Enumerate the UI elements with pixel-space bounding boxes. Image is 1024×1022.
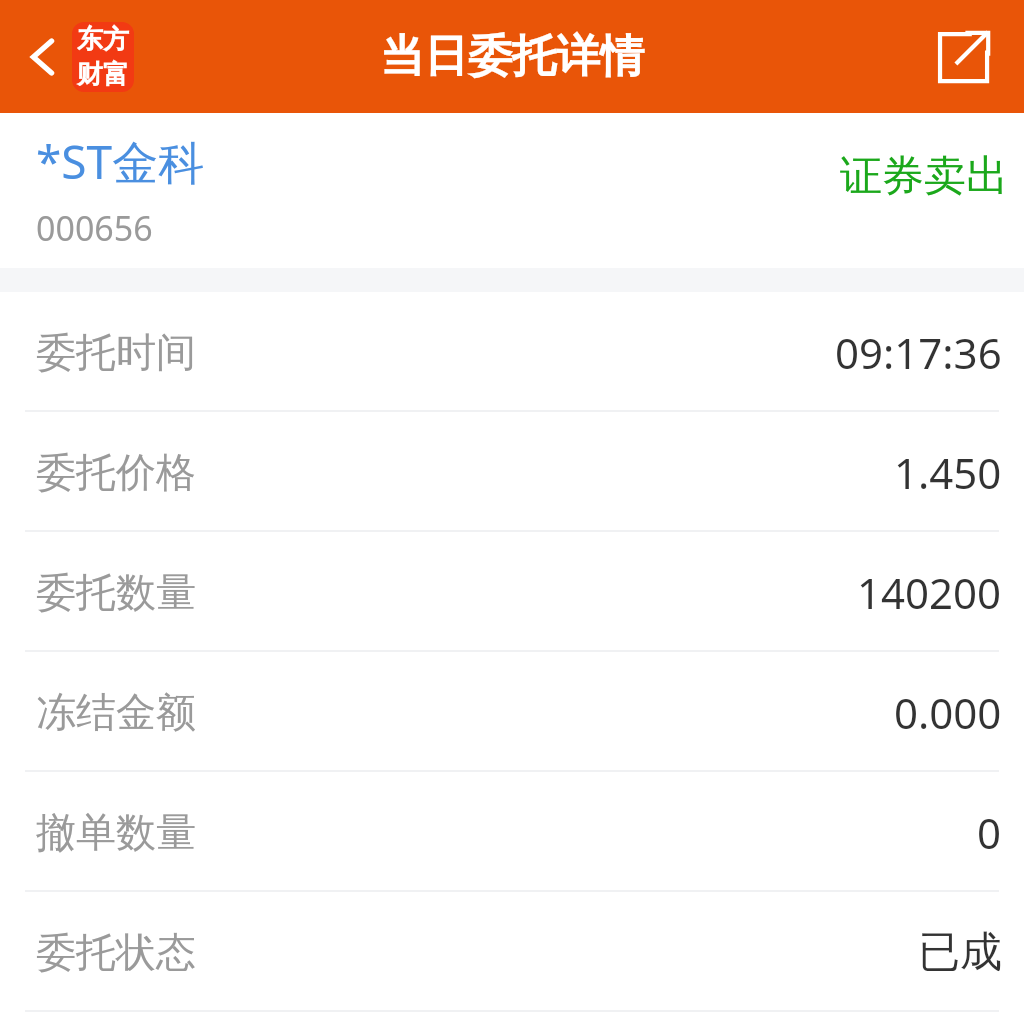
staticText: 0: [977, 804, 1002, 861]
staticText: 证券卖出: [840, 150, 1008, 203]
staticText: 财富: [77, 58, 129, 91]
staticText: 已成: [918, 926, 1002, 979]
button[interactable]: 委托数量: [0, 532, 1024, 652]
button[interactable]: Back: [12, 25, 76, 89]
staticText: 委托时间: [36, 327, 196, 377]
button[interactable]: Share: [924, 18, 1002, 96]
button[interactable]: 委托时间: [0, 292, 1024, 412]
staticText: *ST金科: [36, 130, 205, 193]
button[interactable]: 东方财富: [72, 22, 134, 92]
staticText: 撤单数量: [36, 807, 196, 857]
button[interactable]: 委托状态: [0, 892, 1024, 1012]
staticText: 1.450: [894, 444, 1002, 501]
staticText: 0.000: [894, 684, 1002, 741]
staticText: 冻结金额: [36, 687, 196, 737]
staticText: 000656: [36, 205, 153, 251]
staticText: 当日委托详情: [380, 29, 644, 84]
button[interactable]: 委托价格: [0, 412, 1024, 532]
staticText: 委托价格: [36, 447, 196, 497]
staticText: 09:17:36: [835, 324, 1002, 381]
button[interactable]: *ST金科: [0, 113, 1024, 268]
button[interactable]: 撤单数量: [0, 772, 1024, 892]
button[interactable]: 冻结金额: [0, 652, 1024, 772]
staticText: 委托状态: [36, 927, 196, 977]
staticText: 东方: [77, 23, 129, 56]
staticText: 委托数量: [36, 567, 196, 617]
staticText: 140200: [857, 564, 1002, 621]
